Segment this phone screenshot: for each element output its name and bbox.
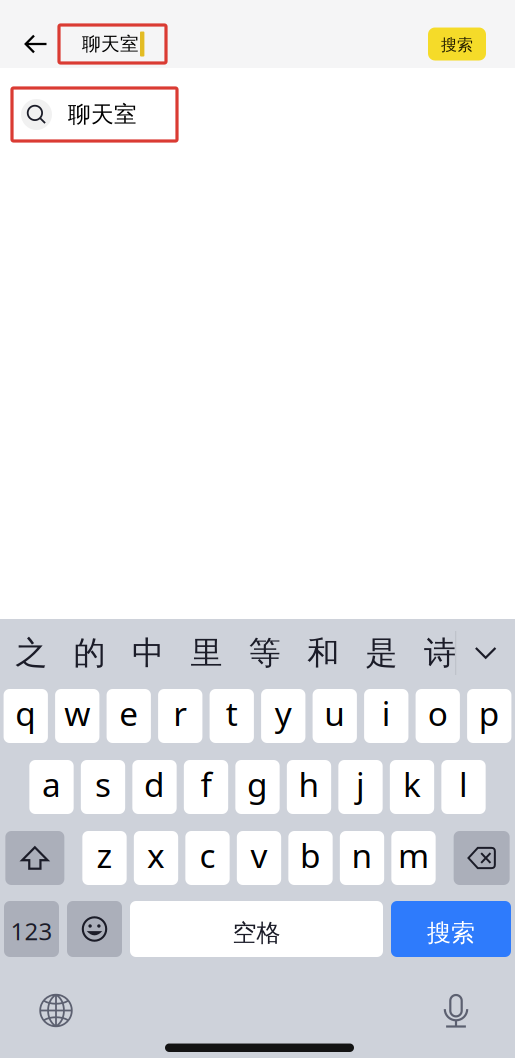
- staticText: 里: [190, 633, 222, 673]
- staticText: k: [403, 762, 421, 806]
- staticText: g: [247, 762, 268, 806]
- button[interactable]: Dictation: [428, 986, 484, 1034]
- button[interactable]: Hide candidates: [456, 625, 515, 681]
- button[interactable]: o: [416, 689, 460, 743]
- button[interactable]: 的: [60, 619, 119, 687]
- button[interactable]: d: [132, 760, 177, 814]
- button[interactable]: p: [467, 689, 511, 743]
- staticText: 搜索: [441, 35, 473, 55]
- staticText: 之: [15, 633, 47, 673]
- button[interactable]: 空格: [130, 901, 383, 957]
- button[interactable]: 搜索: [391, 901, 511, 957]
- staticText: 中: [132, 633, 164, 673]
- button[interactable]: Switch keyboard: [28, 986, 84, 1034]
- staticText: s: [95, 762, 111, 806]
- button[interactable]: 123: [4, 901, 59, 957]
- button[interactable]: w: [55, 689, 99, 743]
- button[interactable]: 搜索: [428, 27, 486, 60]
- button[interactable]: m: [391, 831, 436, 885]
- staticText: 123: [10, 915, 52, 947]
- button[interactable]: s: [81, 760, 125, 814]
- button[interactable]: j: [338, 760, 383, 814]
- button[interactable]: a: [29, 760, 74, 814]
- button[interactable]: i: [364, 689, 408, 743]
- button[interactable]: q: [4, 689, 48, 743]
- staticText: m: [398, 833, 429, 877]
- staticText: n: [351, 833, 372, 877]
- button[interactable]: z: [82, 831, 127, 885]
- button[interactable]: b: [288, 831, 333, 885]
- button[interactable]: r: [158, 689, 202, 743]
- button[interactable]: 之: [2, 619, 60, 687]
- staticText: z: [96, 833, 112, 877]
- staticText: r: [173, 691, 187, 735]
- button[interactable]: Shift: [5, 831, 64, 885]
- staticText: f: [200, 762, 211, 806]
- staticText: 等: [249, 633, 281, 673]
- button[interactable]: 诗: [411, 619, 469, 687]
- staticText: t: [226, 691, 238, 735]
- staticText: l: [459, 762, 468, 806]
- staticText: v: [250, 833, 267, 877]
- staticText: b: [300, 833, 321, 877]
- staticText: 的: [74, 633, 106, 673]
- button[interactable]: 和: [294, 619, 352, 687]
- staticText: e: [119, 691, 138, 735]
- button[interactable]: Delete: [454, 831, 510, 885]
- staticText: j: [356, 762, 365, 806]
- staticText: 聊天室: [82, 32, 139, 55]
- staticText: p: [479, 691, 500, 735]
- staticText: 诗: [424, 633, 456, 673]
- staticText: 空格: [232, 918, 280, 948]
- staticText: a: [42, 762, 61, 806]
- button[interactable]: Emoji keyboard: [67, 901, 122, 957]
- button[interactable]: v: [237, 831, 281, 885]
- staticText: w: [64, 691, 90, 735]
- button[interactable]: h: [287, 760, 331, 814]
- button[interactable]: 中: [119, 619, 177, 687]
- button[interactable]: n: [340, 831, 384, 885]
- staticText: c: [199, 833, 215, 877]
- staticText: 是: [366, 633, 398, 673]
- button[interactable]: x: [134, 831, 178, 885]
- staticText: d: [144, 762, 165, 806]
- button[interactable]: c: [185, 831, 230, 885]
- button[interactable]: t: [210, 689, 254, 743]
- staticText: o: [428, 691, 448, 735]
- staticText: 和: [307, 633, 339, 673]
- staticText: y: [275, 691, 292, 735]
- button[interactable]: u: [313, 689, 357, 743]
- button[interactable]: l: [441, 760, 486, 814]
- button[interactable]: k: [390, 760, 434, 814]
- button[interactable]: f: [184, 760, 228, 814]
- button[interactable]: Back: [13, 22, 59, 66]
- staticText: u: [324, 691, 345, 735]
- button[interactable]: y: [261, 689, 305, 743]
- staticText: q: [15, 691, 36, 735]
- button[interactable]: 里: [177, 619, 236, 687]
- button[interactable]: e: [107, 689, 151, 743]
- staticText: x: [147, 833, 165, 877]
- button[interactable]: 等: [236, 619, 294, 687]
- button[interactable]: 聊天室: [12, 88, 177, 141]
- staticText: 聊天室: [68, 101, 137, 128]
- staticText: i: [382, 691, 391, 735]
- staticText: h: [298, 762, 319, 806]
- button[interactable]: 是: [352, 619, 411, 687]
- button[interactable]: g: [235, 760, 280, 814]
- staticText: 搜索: [427, 918, 475, 948]
